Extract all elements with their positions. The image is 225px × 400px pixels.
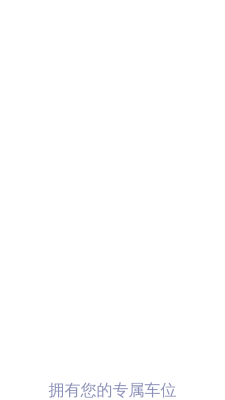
staticText: 拥有您的专属车位	[48, 380, 176, 400]
